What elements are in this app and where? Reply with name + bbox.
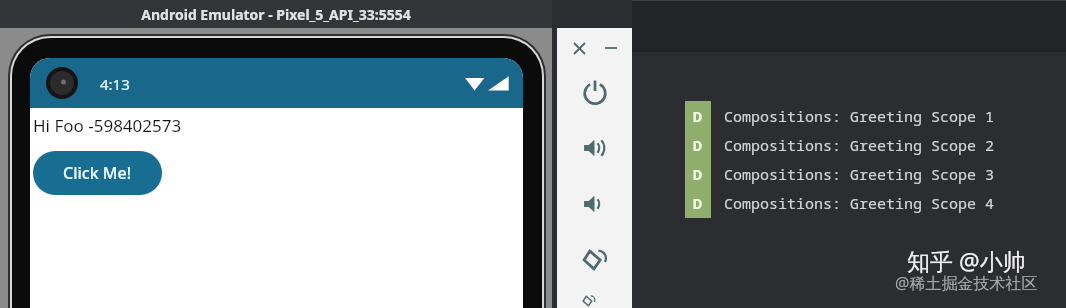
button[interactable]: Volume up — [573, 126, 617, 170]
button[interactable]: Minimize — [599, 36, 623, 60]
staticText: 知乎 @小帅 — [907, 245, 1026, 276]
staticText: Compositions: Greeting Scope 2 — [724, 135, 995, 155]
button[interactable]: Click Me! — [33, 151, 162, 195]
staticText: @稀土掘金技术社区 — [895, 272, 1038, 294]
button[interactable]: Rotate right — [573, 294, 617, 308]
button[interactable]: D — [685, 159, 1066, 188]
staticText: Android Emulator - Pixel_5_API_33:5554 — [141, 5, 411, 24]
staticText: D — [693, 106, 703, 126]
button[interactable]: Volume down — [573, 182, 617, 226]
staticText: Compositions: Greeting Scope 3 — [724, 164, 995, 184]
button[interactable]: D — [685, 101, 1066, 130]
button[interactable]: D — [685, 188, 1066, 217]
button[interactable]: Power — [573, 70, 617, 114]
staticText: Compositions: Greeting Scope 1 — [724, 106, 995, 126]
button[interactable]: D — [685, 130, 1066, 159]
staticText: D — [693, 164, 703, 184]
staticText: 4:13 — [100, 74, 130, 94]
button[interactable]: Rotate left — [573, 238, 617, 282]
staticText: Click Me! — [63, 162, 132, 184]
button[interactable]: Close — [567, 36, 591, 60]
staticText: D — [693, 135, 703, 155]
staticText: Compositions: Greeting Scope 4 — [724, 193, 995, 213]
staticText: Hi Foo -598402573 — [33, 114, 182, 137]
staticText: D — [693, 193, 703, 213]
